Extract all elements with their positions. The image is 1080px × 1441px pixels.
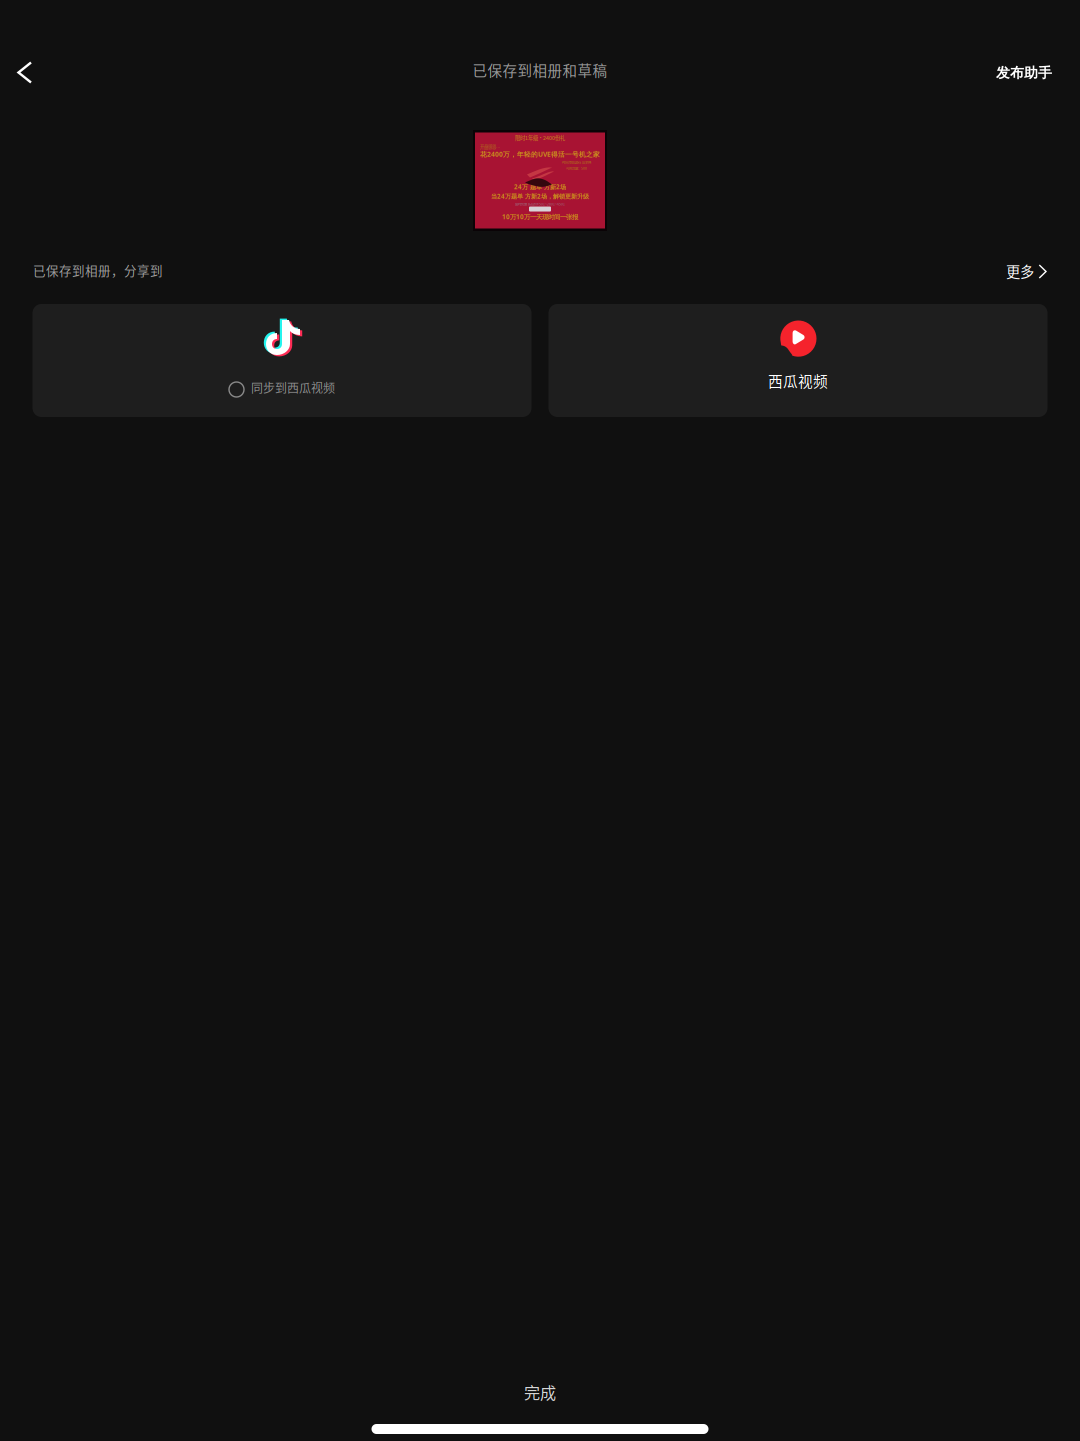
staticText: 发布助手: [996, 64, 1052, 82]
staticText: 已保存到相册，分享到: [33, 261, 163, 279]
button[interactable]: 更多: [1006, 260, 1047, 280]
button[interactable]: 同步到西瓜视频: [32, 304, 531, 417]
staticText: 限时优惠 折后价¥501~2801~4501: [515, 201, 565, 206]
staticText: 更多: [1006, 261, 1034, 281]
button[interactable]: 西瓜视频: [548, 304, 1047, 417]
staticText: 限时1年级·2400份礼: [515, 134, 565, 141]
staticText: 西瓜视频: [768, 370, 828, 391]
staticText: 花2400万，年轻的UVE得活一号机之家: [480, 150, 600, 159]
staticText: 已保存到相册和草稿: [472, 59, 607, 80]
button[interactable]: 发布助手: [984, 47, 1080, 93]
staticText: 开盘感恩…: [480, 143, 500, 150]
staticText: 可用流量：500: [566, 166, 587, 171]
button[interactable]: 完成: [0, 1377, 1080, 1407]
staticText: 当24万题单 方新2场，解锁更新升级: [491, 192, 589, 200]
staticText: 10万10万一天现时间一张报: [502, 212, 578, 221]
staticText: 完成: [524, 1380, 556, 1404]
staticText: 24万 题单 方新2场: [514, 183, 566, 191]
button[interactable]: Back: [0, 47, 50, 93]
staticText: 同步到西瓜视频: [251, 379, 335, 396]
staticText: 时间:想乱是在 反罗典: [562, 160, 591, 165]
